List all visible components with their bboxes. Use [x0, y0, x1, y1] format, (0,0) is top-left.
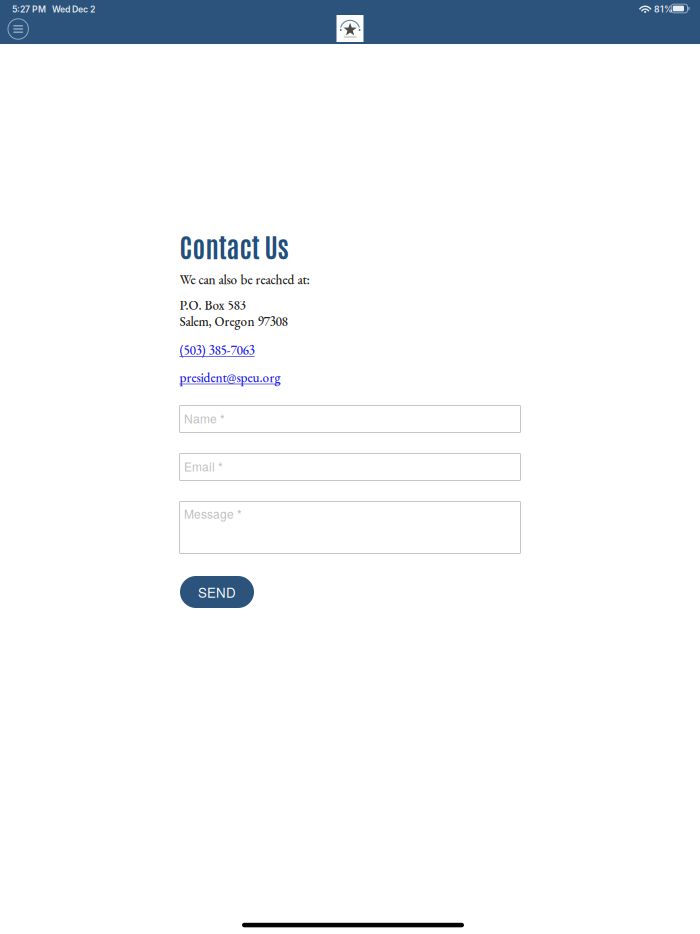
button[interactable]: Message *: [179, 501, 520, 553]
button[interactable]: Name *: [179, 405, 520, 432]
staticText: We can also be reached at:: [179, 271, 309, 288]
staticText: Message *: [184, 505, 242, 522]
button[interactable]: SEND: [180, 576, 254, 608]
staticText: Name *: [184, 410, 225, 427]
staticText: Salem, Oregon 97308: [179, 313, 287, 330]
staticText: president@speu.org: [179, 369, 280, 386]
staticText: Wed Dec 2: [52, 4, 95, 14]
button[interactable]: president@speu.org: [179, 369, 280, 386]
staticText: Contact Us: [179, 228, 288, 263]
button[interactable]: (503) 385-7063: [179, 342, 254, 359]
staticText: 5:27 PM: [12, 4, 46, 14]
staticText: P.O. Box 583: [179, 297, 245, 314]
staticText: Email *: [184, 458, 223, 475]
button[interactable]: Home: [336, 15, 363, 42]
staticText: 81%: [654, 4, 673, 14]
button[interactable]: Menu: [1, 12, 35, 46]
staticText: (503) 385-7063: [179, 342, 254, 359]
staticText: SEND: [198, 582, 236, 602]
button[interactable]: Email *: [179, 453, 520, 480]
